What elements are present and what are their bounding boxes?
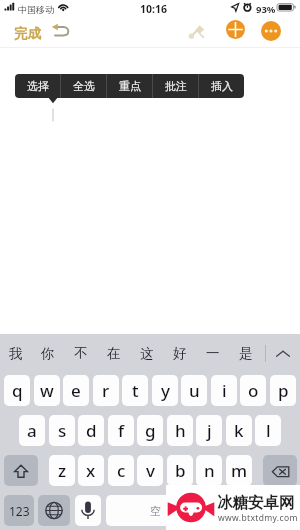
button[interactable]: 批注 bbox=[153, 74, 198, 98]
button[interactable]: 全选 bbox=[61, 74, 106, 98]
button[interactable]: t bbox=[122, 375, 148, 406]
staticText: x bbox=[86, 459, 96, 482]
button[interactable]: e bbox=[63, 375, 89, 406]
button[interactable]: b bbox=[167, 455, 193, 486]
staticText: p bbox=[278, 379, 289, 402]
button[interactable]: j bbox=[196, 415, 222, 446]
staticText: 完成 bbox=[14, 25, 41, 42]
button[interactable]: 是 bbox=[229, 334, 262, 373]
button[interactable]: Expand candidates bbox=[266, 334, 300, 373]
button[interactable]: r bbox=[93, 375, 119, 406]
staticText: i bbox=[222, 379, 227, 402]
staticText: 好 bbox=[173, 345, 187, 362]
staticText: j bbox=[207, 419, 212, 442]
staticText: 这 bbox=[140, 345, 154, 362]
button[interactable]: Backspace bbox=[263, 455, 297, 486]
staticText: w bbox=[40, 379, 54, 402]
button[interactable]: k bbox=[226, 415, 252, 446]
button[interactable]: u bbox=[181, 375, 207, 406]
button[interactable]: m bbox=[226, 455, 252, 486]
button[interactable]: p bbox=[270, 375, 296, 406]
staticText: 我 bbox=[9, 345, 23, 362]
staticText: d bbox=[86, 419, 97, 442]
staticText: r bbox=[102, 379, 110, 402]
button[interactable]: Add bbox=[226, 20, 245, 39]
staticText: 批注 bbox=[165, 79, 187, 93]
button[interactable]: z bbox=[49, 455, 75, 486]
staticText: c bbox=[117, 459, 126, 482]
staticText: o bbox=[248, 379, 259, 402]
staticText: f bbox=[118, 419, 125, 442]
button[interactable]: 在 bbox=[97, 334, 130, 373]
button[interactable]: 这 bbox=[130, 334, 163, 373]
button[interactable]: 重点 bbox=[107, 74, 152, 98]
button[interactable]: 你 bbox=[32, 334, 64, 373]
button[interactable]: l bbox=[255, 415, 281, 446]
button[interactable]: c bbox=[108, 455, 134, 486]
staticText: 重点 bbox=[119, 79, 141, 93]
button[interactable]: 不 bbox=[64, 334, 97, 373]
staticText: k bbox=[234, 419, 244, 442]
staticText: y bbox=[161, 379, 170, 402]
staticText: 一 bbox=[206, 345, 220, 362]
staticText: www.btxtdmy.com bbox=[218, 512, 298, 524]
button[interactable]: a bbox=[19, 415, 45, 446]
button[interactable]: 插入 bbox=[199, 74, 244, 98]
staticText: n bbox=[204, 459, 215, 482]
staticText: m bbox=[231, 459, 248, 482]
button[interactable]: 一 bbox=[196, 334, 229, 373]
button[interactable]: o bbox=[240, 375, 266, 406]
button[interactable]: g bbox=[137, 415, 163, 446]
button[interactable]: s bbox=[49, 415, 75, 446]
staticText: 中国移动 bbox=[18, 4, 54, 15]
button[interactable]: d bbox=[78, 415, 104, 446]
button[interactable]: Undo bbox=[51, 22, 73, 39]
staticText: a bbox=[27, 419, 37, 442]
staticText: 全选 bbox=[73, 79, 95, 93]
staticText: l bbox=[266, 419, 271, 442]
staticText: 你 bbox=[41, 345, 55, 362]
button[interactable]: v bbox=[137, 455, 163, 486]
button[interactable]: q bbox=[4, 375, 30, 406]
staticText: 选择 bbox=[27, 79, 49, 93]
button[interactable]: 我 bbox=[0, 334, 32, 373]
button[interactable]: Voice input bbox=[75, 495, 101, 526]
button[interactable]: 123 bbox=[4, 495, 34, 526]
button[interactable]: More options bbox=[261, 21, 281, 41]
button[interactable]: Brush bbox=[189, 23, 208, 42]
button[interactable]: 选择 bbox=[15, 74, 60, 98]
staticText: v bbox=[146, 459, 155, 482]
staticText: 是 bbox=[239, 345, 253, 362]
button[interactable]: 好 bbox=[163, 334, 196, 373]
staticText: 插入 bbox=[211, 79, 233, 93]
staticText: 123 bbox=[9, 503, 30, 519]
button[interactable]: x bbox=[78, 455, 104, 486]
button[interactable]: 完成 bbox=[8, 18, 46, 48]
button[interactable]: Switch keyboard bbox=[38, 495, 70, 526]
staticText: 冰糖安卓网 bbox=[217, 493, 295, 513]
staticText: z bbox=[58, 459, 67, 482]
staticText: 不 bbox=[74, 345, 88, 362]
button[interactable]: w bbox=[34, 375, 60, 406]
staticText: 空 bbox=[150, 504, 161, 518]
staticText: h bbox=[175, 419, 186, 442]
button[interactable]: 空 bbox=[106, 495, 205, 526]
staticText: g bbox=[145, 419, 156, 442]
button[interactable]: y bbox=[152, 375, 178, 406]
staticText: t bbox=[132, 379, 139, 402]
staticText: 10:16 bbox=[140, 2, 167, 16]
button[interactable]: f bbox=[108, 415, 134, 446]
staticText: s bbox=[58, 419, 67, 442]
button[interactable]: h bbox=[167, 415, 193, 446]
button[interactable]: i bbox=[211, 375, 237, 406]
button[interactable]: Shift bbox=[4, 455, 38, 486]
button[interactable]: 换行 bbox=[209, 495, 297, 526]
staticText: u bbox=[189, 379, 200, 402]
staticText: 在 bbox=[107, 345, 121, 362]
staticText: b bbox=[175, 459, 186, 482]
staticText: 93% bbox=[256, 3, 276, 16]
staticText: q bbox=[12, 379, 23, 402]
staticText: e bbox=[71, 379, 81, 402]
button[interactable]: n bbox=[196, 455, 222, 486]
staticText: 换行 bbox=[242, 504, 264, 518]
